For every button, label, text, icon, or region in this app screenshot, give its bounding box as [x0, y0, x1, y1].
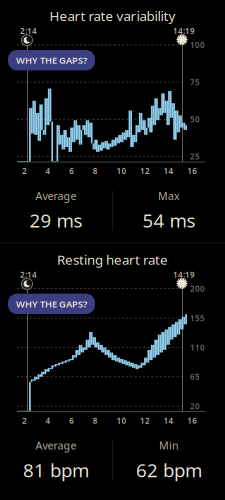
staticText: Heart rate variability	[49, 7, 175, 25]
staticText: WHY THE GAPS?	[16, 298, 87, 310]
staticText: 10	[116, 415, 126, 426]
staticText: 29 ms	[29, 208, 82, 233]
staticText: 25	[190, 151, 200, 162]
staticText: Average	[35, 438, 76, 453]
button[interactable]: WHY THE GAPS?	[8, 294, 95, 314]
staticText: 14:19	[173, 269, 195, 280]
staticText: WHY THE GAPS?	[16, 54, 87, 66]
button[interactable]: WHY THE GAPS?	[8, 50, 95, 70]
staticText: 50	[190, 114, 200, 125]
staticText: 4	[46, 166, 51, 176]
staticText: 100	[190, 40, 205, 50]
staticText: 20	[190, 401, 200, 411]
staticText: 62 bpm	[136, 457, 202, 482]
staticText: 200	[190, 283, 205, 294]
staticText: 14	[164, 166, 174, 176]
staticText: 2:14	[20, 26, 37, 36]
staticText: 10	[116, 166, 126, 176]
staticText: 81 bpm	[23, 457, 89, 482]
staticText: 2:14	[20, 269, 37, 280]
staticText: Resting heart rate	[57, 251, 168, 268]
staticText: 16	[187, 415, 197, 426]
staticText: 54 ms	[142, 208, 195, 233]
staticText: 8	[93, 415, 98, 426]
staticText: 14	[164, 415, 174, 426]
staticText: 2	[22, 415, 27, 426]
staticText: 2	[22, 166, 27, 176]
staticText: 8	[93, 166, 98, 176]
staticText: 65	[190, 371, 200, 382]
staticText: 16	[187, 166, 197, 176]
staticText: 12	[140, 415, 150, 426]
staticText: 6	[69, 415, 74, 426]
staticText: 4	[46, 415, 51, 426]
staticText: Max	[158, 189, 180, 203]
staticText: 110	[190, 342, 205, 353]
staticText: 12	[140, 166, 150, 176]
staticText: 75	[190, 77, 200, 87]
staticText: Min	[159, 438, 179, 453]
staticText: 6	[69, 166, 74, 176]
staticText: Average	[35, 189, 76, 203]
staticText: 155	[190, 313, 205, 323]
staticText: 14:19	[173, 26, 195, 36]
